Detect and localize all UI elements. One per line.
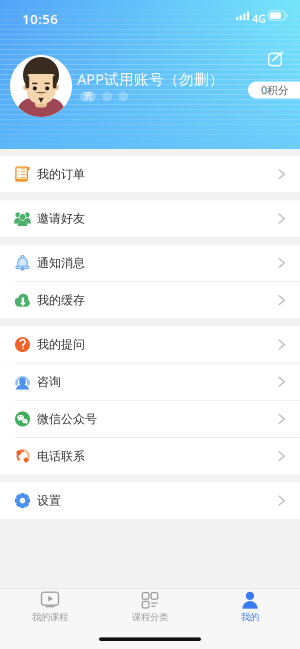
button[interactable]: 我的: [200, 589, 300, 621]
staticText: 设置: [37, 493, 61, 508]
staticText: APP试用账号（勿删）: [77, 69, 224, 89]
staticText: 微信公众号: [37, 412, 97, 426]
staticText: 10:56: [22, 10, 58, 28]
button[interactable]: 我的缓存: [0, 282, 300, 318]
button[interactable]: 编辑资料: [265, 49, 285, 69]
button[interactable]: 微信公众号: [0, 401, 300, 437]
staticText: 我的订单: [37, 167, 85, 181]
staticText: 咨询: [37, 374, 61, 389]
button[interactable]: 咨询: [0, 364, 300, 400]
button[interactable]: 我的课程: [0, 589, 100, 621]
staticText: 4G: [252, 11, 266, 26]
button[interactable]: 设置: [0, 482, 300, 519]
staticText: 0积分: [261, 83, 289, 97]
button[interactable]: 我的订单: [0, 156, 300, 192]
staticText: 电话联系: [37, 449, 85, 463]
staticText: 我的: [241, 611, 259, 623]
staticText: 通知消息: [37, 256, 85, 270]
staticText: 课程分类: [132, 611, 168, 623]
staticText: 我的课程: [32, 611, 68, 623]
staticText: 我的提问: [37, 337, 85, 352]
staticText: 邀请好友: [37, 211, 85, 226]
staticText: 男: [83, 91, 92, 102]
button[interactable]: 课程分类: [100, 589, 200, 621]
button[interactable]: 通知消息: [0, 245, 300, 281]
button[interactable]: 电话联系: [0, 438, 300, 474]
button[interactable]: 0积分: [248, 81, 300, 98]
button[interactable]: 邀请好友: [0, 200, 300, 237]
staticText: 我的缓存: [37, 293, 85, 307]
button[interactable]: 我的提问: [0, 326, 300, 363]
